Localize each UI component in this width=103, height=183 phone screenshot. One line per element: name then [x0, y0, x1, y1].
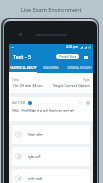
staticText: Time	[12, 78, 19, 82]
staticText: Type	[83, 78, 90, 82]
button[interactable]: Finish Test	[56, 54, 79, 59]
button[interactable]: 1	[12, 125, 90, 144]
staticText: गंभीर वाणी	[28, 176, 43, 181]
staticText: GENERAL ENGLISH	[67, 66, 92, 70]
staticText: 4:32 pm	[66, 45, 79, 49]
staticText: Test - 5	[13, 53, 32, 60]
button[interactable]: GENERAL ENGLISH	[65, 63, 93, 73]
staticText: Finish Test	[59, 54, 76, 59]
staticText: प्रश्न 1/50	[12, 100, 26, 105]
button[interactable]: Question palette	[77, 99, 84, 106]
button[interactable]: Bookmark	[84, 99, 91, 106]
staticText: 1 hr 29 min 34 sec	[12, 83, 43, 88]
staticText: REASONING	[43, 66, 59, 70]
staticText: NUMERICAL ABILITY	[10, 66, 37, 70]
staticText: निर्देश : निम्नलिखित में से सही विकल्प क…	[12, 108, 74, 113]
button[interactable]: Menu	[83, 54, 89, 60]
staticText: 1	[18, 133, 20, 137]
staticText: Single Correct Option	[53, 83, 90, 88]
button[interactable]: 3	[12, 169, 90, 183]
staticText: सूक्ष्म दर्शी	[28, 154, 41, 159]
staticText: विचार शील	[28, 132, 43, 137]
staticText: 2	[18, 155, 20, 159]
staticText: 3	[18, 177, 20, 181]
button[interactable]: 2	[12, 147, 90, 166]
staticText: Live Exam Environment	[21, 6, 82, 13]
button[interactable]: NUMERICAL ABILITY	[9, 63, 37, 73]
button[interactable]: REASONING	[37, 63, 65, 73]
